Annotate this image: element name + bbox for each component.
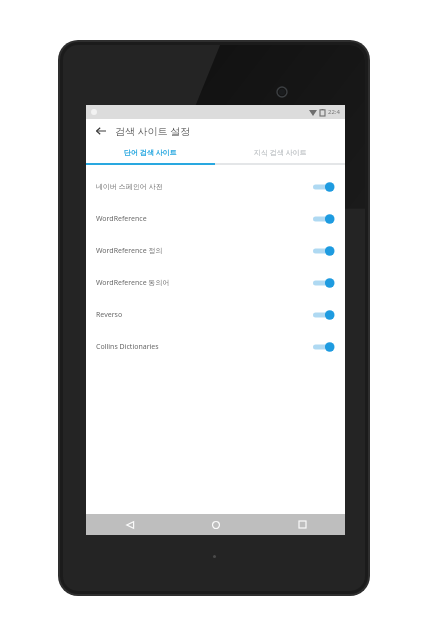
button[interactable]: Toggle [313, 213, 335, 225]
staticText: Reverso [96, 310, 313, 320]
button[interactable]: Recents [259, 514, 345, 535]
button[interactable]: Home [173, 514, 259, 535]
staticText: Collins Dictionaries [96, 342, 313, 352]
button[interactable]: Collins Dictionaries [86, 331, 345, 363]
button[interactable]: Back [92, 122, 110, 140]
button[interactable]: Back [86, 514, 173, 535]
button[interactable]: WordReference [86, 203, 345, 235]
staticText: WordReference 정의 [96, 246, 313, 256]
button[interactable]: Reverso [86, 299, 345, 331]
button[interactable]: 단어 검색 사이트 [86, 143, 215, 163]
button[interactable]: Toggle [313, 341, 335, 353]
staticText: 22:4 [328, 108, 340, 116]
staticText: 네이버 스페인어 사전 [96, 182, 313, 192]
button[interactable]: Toggle [313, 181, 335, 193]
button[interactable]: 지식 검색 사이트 [215, 143, 345, 163]
staticText: 지식 검색 사이트 [254, 148, 307, 158]
staticText: WordReference [96, 214, 313, 224]
button[interactable]: WordReference 정의 [86, 235, 345, 267]
staticText: 단어 검색 사이트 [124, 148, 177, 158]
button[interactable]: Toggle [313, 277, 335, 289]
staticText: 검색 사이트 설정 [115, 124, 191, 138]
button[interactable]: WordReference 동의어 [86, 267, 345, 299]
staticText: WordReference 동의어 [96, 278, 313, 288]
button[interactable]: Toggle [313, 309, 335, 321]
button[interactable]: Toggle [313, 245, 335, 257]
button[interactable]: 네이버 스페인어 사전 [86, 171, 345, 203]
